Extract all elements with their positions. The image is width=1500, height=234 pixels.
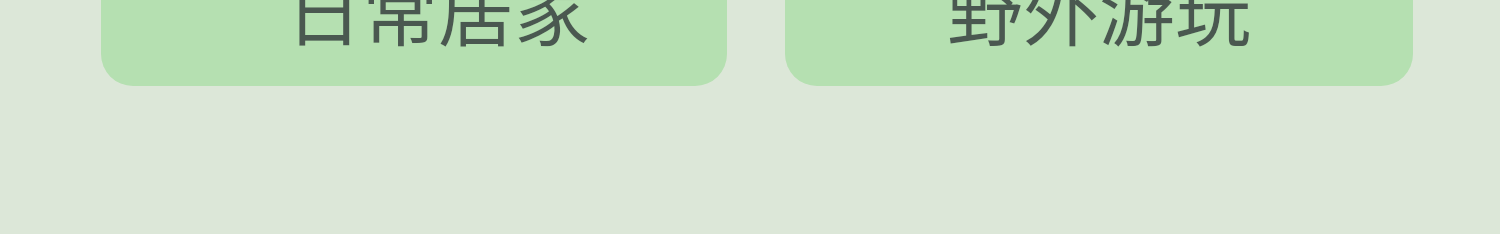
button[interactable]: 野外游玩	[785, 0, 1413, 86]
staticText: 野外游玩	[947, 0, 1251, 62]
staticText: 日常居家	[286, 0, 590, 62]
button[interactable]: 日常居家	[101, 0, 727, 86]
